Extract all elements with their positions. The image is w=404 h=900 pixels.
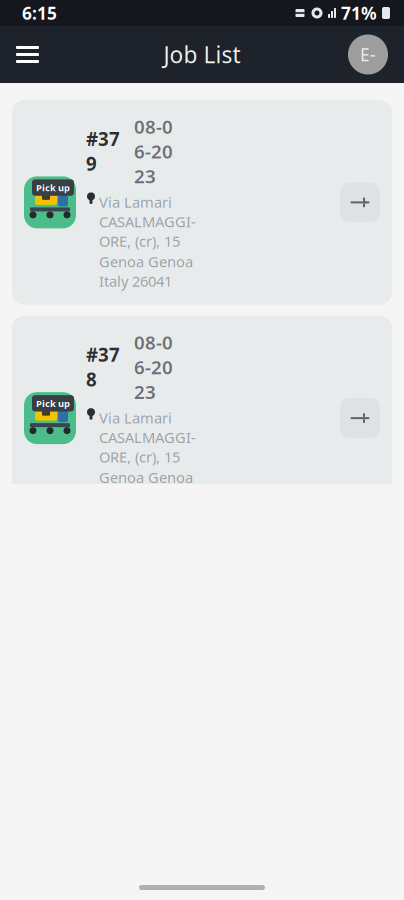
staticText: 08-06-2023 (134, 330, 173, 404)
button[interactable]: Account (348, 34, 404, 74)
staticText: Job List (163, 39, 240, 69)
staticText: E- (360, 43, 376, 66)
button[interactable]: Menu (0, 34, 55, 75)
staticText: 08-06-2023 (134, 114, 173, 188)
staticText: Via Lamari CASALMAGGIORE, (cr), 15 (99, 408, 196, 466)
staticText: 6:15 (22, 1, 57, 24)
staticText: #378 (86, 342, 120, 392)
staticText: Via Lamari CASALMAGGIORE, (cr), 15 (99, 192, 196, 251)
button[interactable]: Pick up (12, 100, 392, 305)
button[interactable]: Pick up (12, 316, 392, 521)
staticText: Genoa Genoa Italy 26041 (99, 252, 193, 291)
staticText: Genoa Genoa Italy 26041 (99, 468, 193, 507)
staticText: #379 (86, 126, 120, 176)
staticText: Pick up (36, 181, 70, 194)
staticText: 71% (341, 1, 377, 24)
staticText: Pick up (36, 397, 70, 409)
